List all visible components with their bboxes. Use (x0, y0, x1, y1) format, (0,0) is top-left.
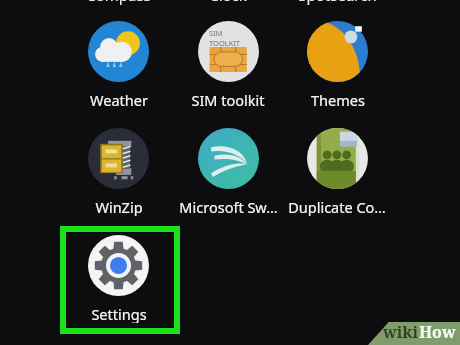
button[interactable]: Microsoft Sw… (174, 128, 282, 216)
staticText: SIM (209, 28, 223, 38)
staticText: Spotsearch (298, 0, 377, 5)
staticText: Duplicate Co… (288, 197, 386, 216)
staticText: Compass (86, 0, 151, 5)
staticText: Themes (311, 90, 365, 109)
button[interactable]: Weather (64, 21, 172, 109)
staticText: SIM toolkit (191, 90, 265, 109)
button[interactable]: SIM (174, 21, 282, 109)
button[interactable]: Settings (64, 235, 172, 323)
staticText: WinZip (95, 197, 143, 216)
staticText: Clock (209, 0, 247, 5)
staticText: Weather (90, 90, 148, 109)
button[interactable]: Themes (283, 21, 391, 109)
staticText: How (419, 321, 456, 343)
button[interactable]: Duplicate Co… (283, 128, 391, 216)
staticText: Settings (91, 304, 147, 323)
staticText: Microsoft Sw… (179, 197, 278, 216)
staticText: TOOLKIT (209, 38, 241, 48)
staticText: wiki (383, 321, 419, 343)
button[interactable]: WinZip (64, 128, 172, 216)
